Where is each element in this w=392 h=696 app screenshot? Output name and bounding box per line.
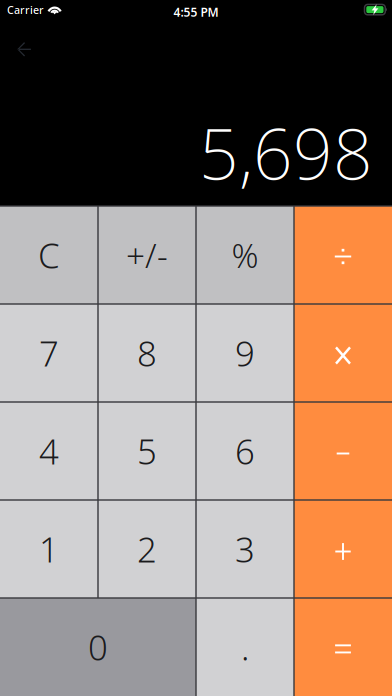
button[interactable]: 8 [98,304,196,402]
staticText: 5,698 [199,107,373,199]
staticText: 5 [137,428,157,474]
button[interactable]: Multiply [294,304,392,402]
button[interactable]: 0 [0,598,196,696]
button[interactable]: Subtract [294,402,392,500]
button[interactable]: +/- [98,206,196,304]
staticText: 4:55 PM [173,4,218,20]
staticText: % [231,233,258,277]
button[interactable]: C [0,206,98,304]
staticText: 0 [88,624,108,670]
button[interactable]: Equals [294,598,392,696]
button[interactable]: 1 [0,500,98,598]
staticText: 7 [39,330,59,376]
button[interactable]: . [196,598,294,696]
button[interactable]: 9 [196,304,294,402]
staticText: . [241,624,249,670]
button[interactable]: 4 [0,402,98,500]
button[interactable]: 7 [0,304,98,402]
button[interactable]: 3 [196,500,294,598]
button[interactable]: 5 [98,402,196,500]
button[interactable]: Add [294,500,392,598]
button[interactable]: Back [0,33,48,65]
staticText: 6 [235,428,255,474]
staticText: 2 [137,526,157,572]
staticText: 8 [137,330,157,376]
button[interactable]: 6 [196,402,294,500]
button[interactable]: Divide [294,206,392,304]
staticText: +/- [126,233,168,277]
staticText: 1 [39,526,59,572]
staticText: 3 [235,526,255,572]
button[interactable]: 2 [98,500,196,598]
staticText: 9 [235,330,255,376]
staticText: C [38,232,60,278]
button[interactable]: % [196,206,294,304]
staticText: 4 [39,428,59,474]
staticText: Carrier [7,3,44,17]
